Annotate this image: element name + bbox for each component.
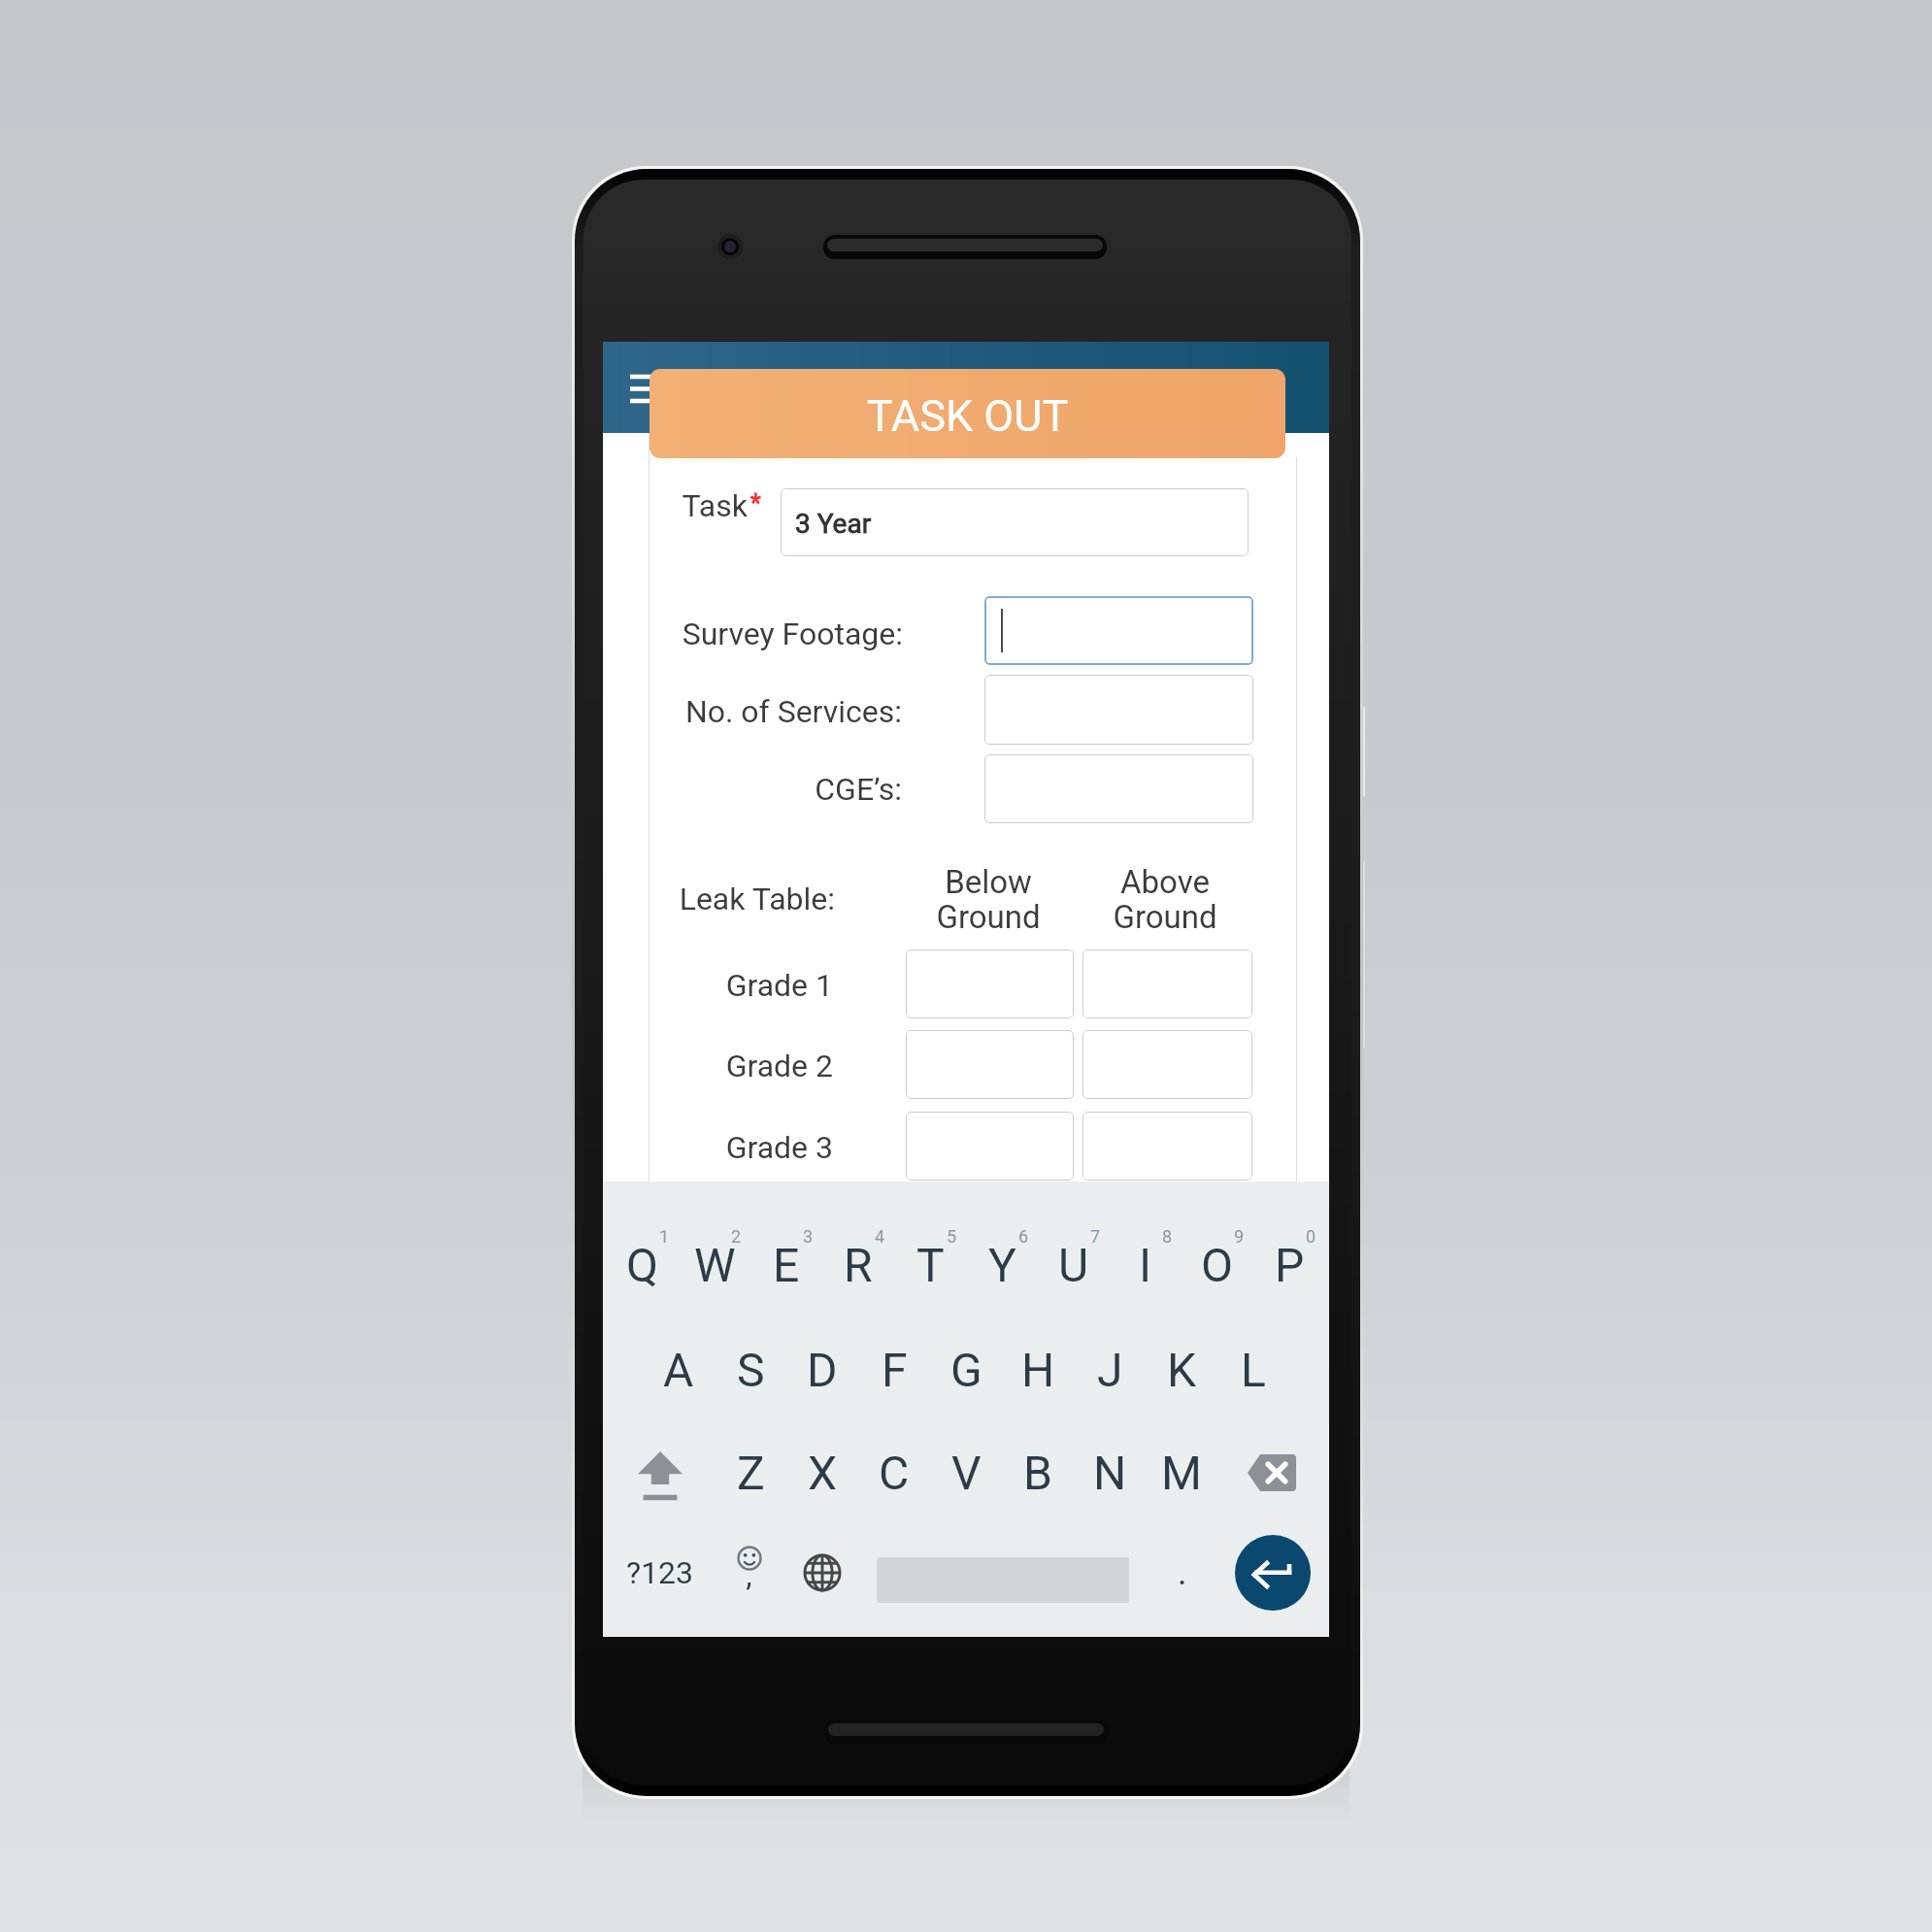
- staticText: Grade 1: [725, 967, 833, 1004]
- button[interactable]: Z: [715, 1424, 786, 1521]
- button[interactable]: Task: [781, 488, 1249, 556]
- staticText: .: [1178, 1552, 1187, 1593]
- staticText: Survey Footage:: [682, 616, 903, 652]
- button[interactable]: G: [930, 1321, 1002, 1418]
- staticText: G: [950, 1343, 983, 1397]
- staticText: K: [1167, 1343, 1197, 1397]
- staticText: Q: [626, 1238, 659, 1292]
- button[interactable]: A: [643, 1321, 715, 1418]
- button[interactable]: Grade 1 below ground: [906, 949, 1074, 1018]
- staticText: 9: [1234, 1226, 1245, 1247]
- staticText: D: [807, 1343, 838, 1397]
- button[interactable]: V: [930, 1424, 1002, 1521]
- staticText: V: [951, 1446, 982, 1500]
- staticText: T: [916, 1238, 945, 1292]
- staticText: R: [844, 1238, 873, 1292]
- staticText: X: [808, 1446, 838, 1500]
- staticText: Z: [737, 1446, 765, 1500]
- button[interactable]: Space: [877, 1557, 1129, 1603]
- button[interactable]: Backspace: [1236, 1424, 1308, 1521]
- staticText: No. of Services:: [684, 693, 902, 730]
- button[interactable]: Y: [966, 1216, 1038, 1314]
- staticText: Task: [682, 487, 748, 524]
- button[interactable]: N: [1074, 1424, 1146, 1521]
- staticText: W: [694, 1238, 736, 1292]
- button[interactable]: Shift: [624, 1429, 696, 1526]
- button[interactable]: ?123: [616, 1524, 704, 1621]
- button[interactable]: T: [894, 1216, 966, 1314]
- staticText: 8: [1162, 1226, 1173, 1247]
- staticText: O: [1201, 1238, 1234, 1292]
- staticText: E: [773, 1238, 800, 1292]
- button[interactable]: Grade 2 below ground: [906, 1030, 1074, 1099]
- button[interactable]: .: [1147, 1524, 1218, 1621]
- staticText: *: [750, 489, 761, 515]
- staticText: C: [879, 1446, 910, 1500]
- staticText: Above Ground: [1058, 863, 1272, 936]
- button[interactable]: Grade 1 above ground: [1083, 949, 1252, 1018]
- staticText: 1: [659, 1226, 670, 1247]
- button[interactable]: J: [1074, 1321, 1146, 1418]
- staticText: 5: [947, 1226, 957, 1247]
- staticText: 4: [875, 1226, 885, 1247]
- staticText: 7: [1090, 1226, 1101, 1247]
- button[interactable]: TASK OUT: [650, 369, 1285, 458]
- staticText: M: [1161, 1446, 1202, 1500]
- button[interactable]: L: [1217, 1321, 1289, 1418]
- staticText: 6: [1018, 1226, 1029, 1247]
- staticText: Leak Table:: [679, 881, 835, 917]
- button[interactable]: H: [1002, 1321, 1074, 1418]
- button[interactable]: O: [1182, 1216, 1253, 1314]
- staticText: 0: [1306, 1226, 1316, 1247]
- button[interactable]: X: [786, 1424, 858, 1521]
- button[interactable]: Grade 3 above ground: [1083, 1112, 1252, 1181]
- button[interactable]: Enter: [1235, 1535, 1311, 1611]
- staticText: L: [1241, 1343, 1266, 1397]
- button[interactable]: B: [1002, 1424, 1074, 1521]
- staticText: ,: [746, 1556, 752, 1593]
- staticText: ?123: [626, 1554, 694, 1591]
- staticText: 3 Year: [795, 508, 872, 540]
- button[interactable]: Emoji and comma: [713, 1524, 784, 1621]
- button[interactable]: No. of Services: [984, 675, 1253, 745]
- button[interactable]: Survey Footage: [984, 596, 1253, 665]
- button[interactable]: Grade 2 above ground: [1083, 1030, 1252, 1099]
- button[interactable]: W: [679, 1216, 750, 1314]
- staticText: I: [1139, 1238, 1152, 1292]
- staticText: 2: [731, 1226, 742, 1247]
- staticText: TASK OUT: [650, 390, 1285, 442]
- button[interactable]: Q: [607, 1216, 679, 1314]
- button[interactable]: F: [858, 1321, 930, 1418]
- button[interactable]: U: [1038, 1216, 1110, 1314]
- button[interactable]: C: [858, 1424, 930, 1521]
- button[interactable]: S: [715, 1321, 786, 1418]
- button[interactable]: D: [786, 1321, 858, 1418]
- button[interactable]: Open navigation menu: [618, 359, 665, 419]
- button[interactable]: E: [750, 1216, 822, 1314]
- button[interactable]: Grade 3 below ground: [906, 1112, 1074, 1181]
- button[interactable]: K: [1146, 1321, 1217, 1418]
- staticText: F: [882, 1343, 908, 1397]
- staticText: 3: [803, 1226, 814, 1247]
- staticText: CGE’s:: [815, 771, 902, 808]
- staticText: A: [663, 1343, 694, 1397]
- staticText: P: [1275, 1238, 1305, 1292]
- staticText: Y: [988, 1238, 1016, 1292]
- staticText: U: [1058, 1238, 1089, 1292]
- button[interactable]: CGE’s: [984, 754, 1253, 823]
- button[interactable]: Change keyboard language: [786, 1524, 858, 1621]
- button[interactable]: P: [1253, 1216, 1325, 1314]
- staticText: S: [737, 1343, 765, 1397]
- staticText: J: [1097, 1343, 1123, 1397]
- staticText: Grade 2: [725, 1048, 833, 1084]
- staticText: B: [1023, 1446, 1052, 1500]
- button[interactable]: R: [822, 1216, 894, 1314]
- button[interactable]: M: [1146, 1424, 1217, 1521]
- staticText: H: [1021, 1343, 1055, 1397]
- button[interactable]: I: [1110, 1216, 1182, 1314]
- staticText: N: [1093, 1446, 1127, 1500]
- staticText: Below Ground: [882, 863, 1095, 936]
- staticText: Grade 3: [725, 1129, 833, 1166]
